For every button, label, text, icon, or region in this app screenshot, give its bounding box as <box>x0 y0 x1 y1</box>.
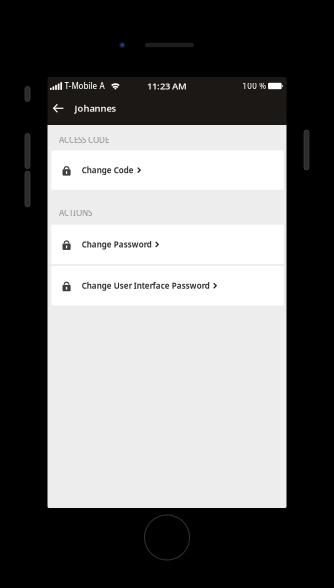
staticText: ACTIONS <box>59 207 92 218</box>
staticText: T-Mobile A <box>64 81 104 91</box>
staticText: Change User Interface Password <box>82 280 210 291</box>
staticText: Change Password <box>82 239 152 250</box>
staticText: ACCESS CODE <box>59 135 109 145</box>
staticText: Change Code <box>82 165 134 175</box>
staticText: Johannes <box>75 102 117 114</box>
staticText: 100 % <box>242 81 266 91</box>
button[interactable]: Change Password <box>51 225 284 264</box>
staticText: 11:23 AM <box>147 80 187 92</box>
button[interactable]: Change Code <box>51 150 284 190</box>
button[interactable]: Back <box>47 95 75 121</box>
button[interactable]: Change User Interface Password <box>51 266 284 305</box>
